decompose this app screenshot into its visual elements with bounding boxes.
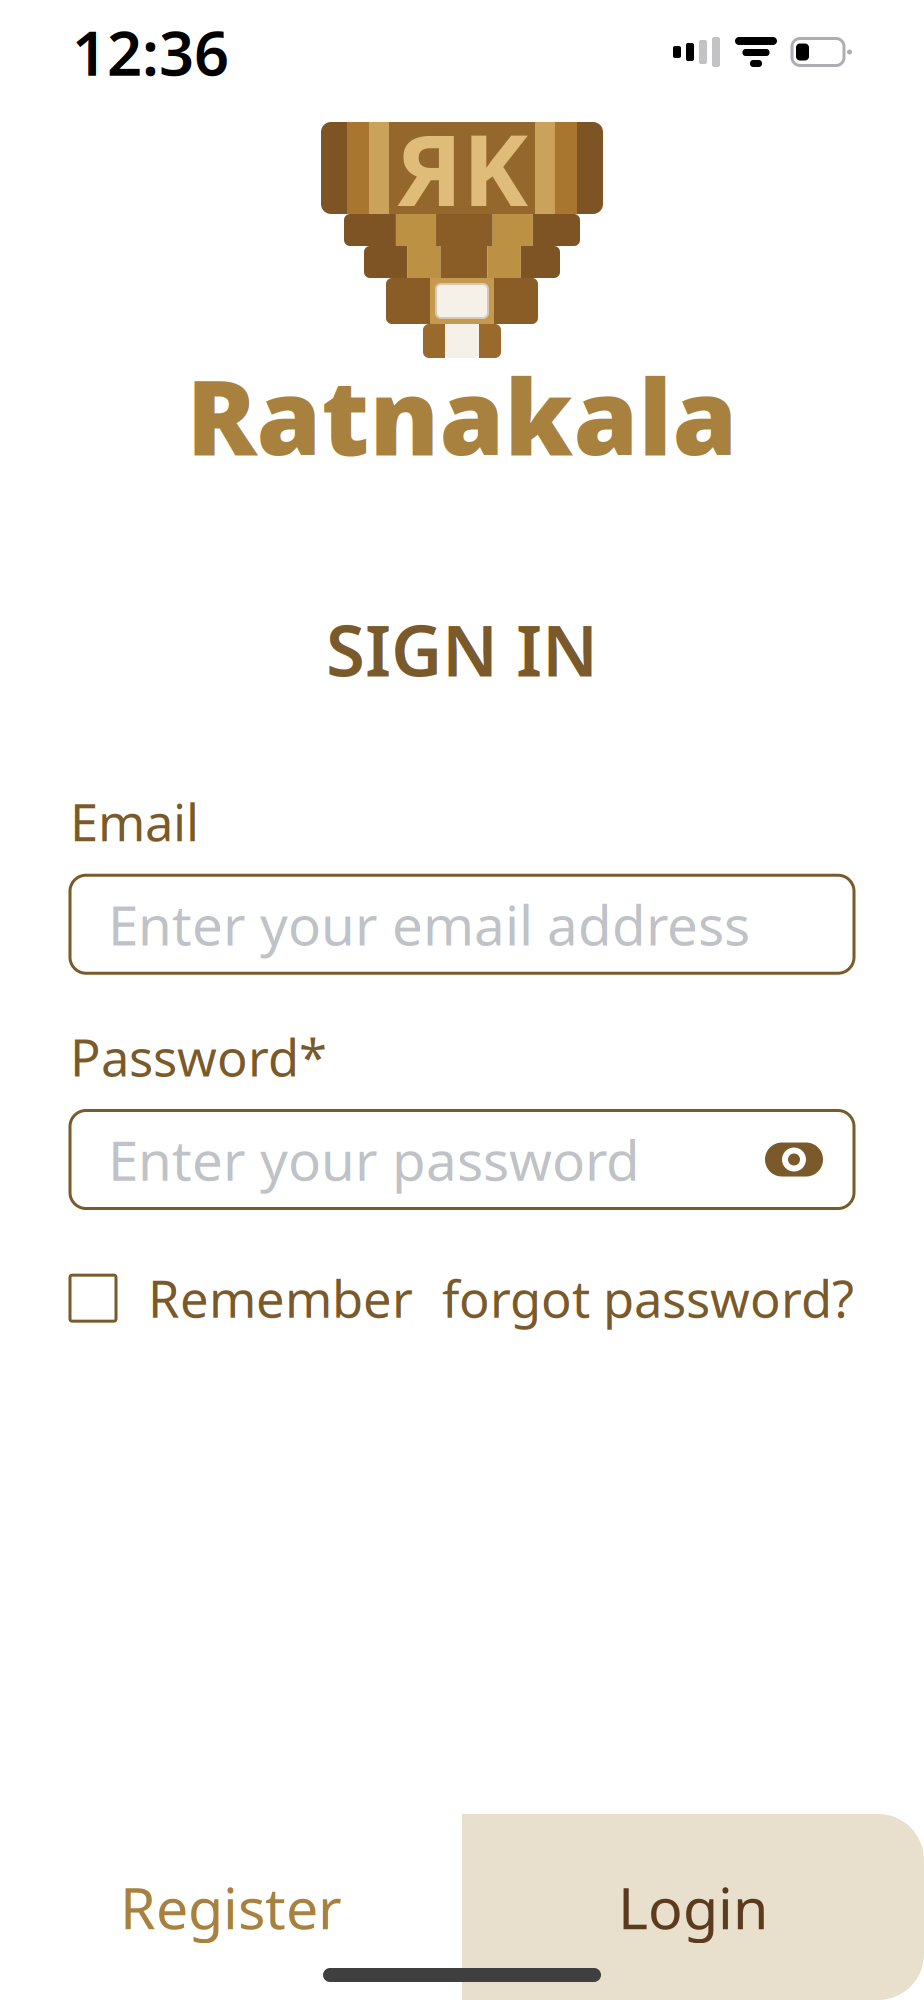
staticText: forgot password?: [442, 1264, 854, 1332]
button[interactable]: Login: [462, 1814, 924, 2000]
staticText: Login: [618, 1869, 768, 1945]
staticText: Email: [70, 788, 199, 855]
staticText: ЯK: [395, 102, 528, 233]
staticText: Register: [120, 1869, 342, 1945]
staticText: Remember: [148, 1264, 413, 1332]
staticText: Password*: [70, 1023, 327, 1090]
staticText: Ratnakala: [186, 346, 737, 484]
button[interactable]: forgot password?: [442, 1264, 854, 1332]
button[interactable]: Show password: [754, 1119, 834, 1199]
button[interactable]: Register: [0, 1814, 462, 2000]
button[interactable]: Remember: [70, 1264, 413, 1332]
staticText: Enter your email address: [108, 888, 750, 960]
staticText: 12:36: [72, 11, 229, 93]
staticText: SIGN IN: [326, 602, 598, 696]
staticText: Enter your password: [108, 1123, 640, 1196]
